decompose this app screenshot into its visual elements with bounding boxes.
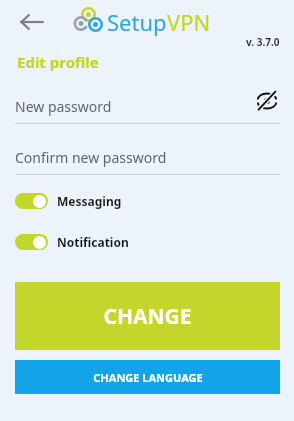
button[interactable]: Notification [15,231,129,253]
staticText: Messaging [57,193,122,209]
staticText: CHANGE [103,302,192,331]
staticText: VPN [167,7,211,37]
button[interactable]: CHANGE LANGUAGE [15,360,280,394]
staticText: Setup [107,7,167,37]
button[interactable]: Confirm new password [15,139,280,175]
button[interactable]: Messaging [15,190,122,212]
staticText: Edit profile [17,52,99,72]
staticText: New password [15,97,112,116]
staticText: v. 3.7.0 [246,35,280,49]
button[interactable]: Toggle password visibility [250,86,284,116]
staticText: CHANGE LANGUAGE [93,370,203,385]
button[interactable]: New password [15,88,280,124]
button[interactable]: CHANGE [15,282,280,350]
staticText: Notification [57,234,129,250]
staticText: Confirm new password [15,148,167,167]
button[interactable]: Back [14,7,50,37]
